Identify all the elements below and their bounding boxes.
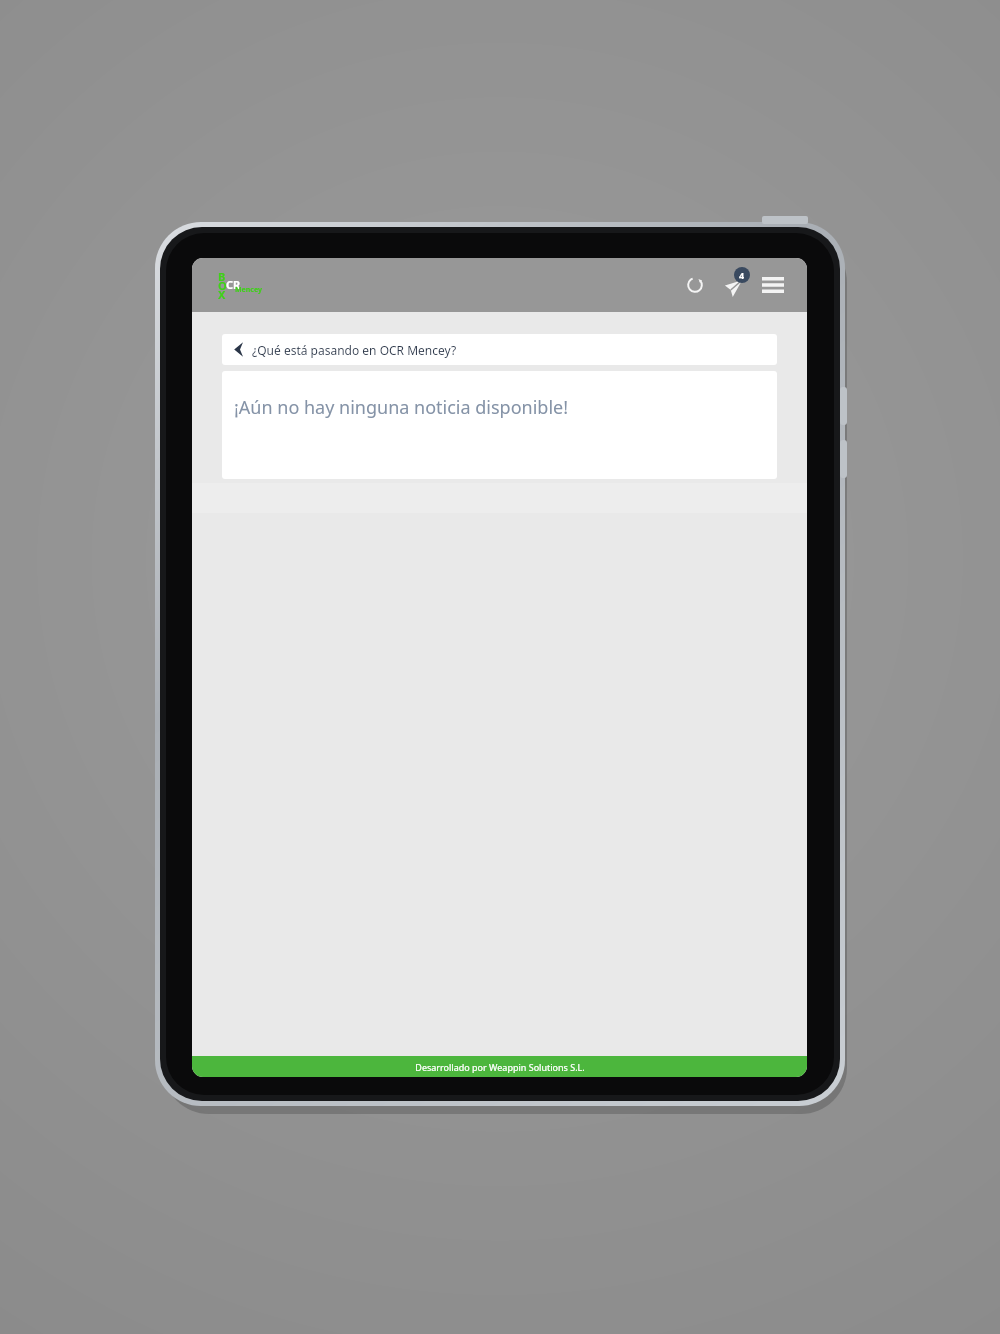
staticText: Desarrollado por Weappin Solutions S.L. <box>415 1061 585 1073</box>
staticText: ¡Aún no hay ninguna noticia disponible! <box>234 395 569 420</box>
staticText: Mencey <box>235 285 262 295</box>
staticText: O <box>218 278 227 293</box>
button[interactable]: Refresh <box>679 269 711 301</box>
staticText: B <box>218 269 226 284</box>
button[interactable]: ¿Qué está pasando en OCR Mencey? <box>222 334 777 365</box>
staticText: CR <box>226 277 241 292</box>
button[interactable]: Menu <box>757 269 789 301</box>
button[interactable]: BOX OCR Mencey logo <box>218 268 272 302</box>
staticText: ¿Qué está pasando en OCR Mencey? <box>252 342 457 358</box>
staticText: 4 <box>739 269 745 281</box>
staticText: X <box>218 287 226 302</box>
button[interactable]: Messages, 4 unread <box>715 267 751 303</box>
